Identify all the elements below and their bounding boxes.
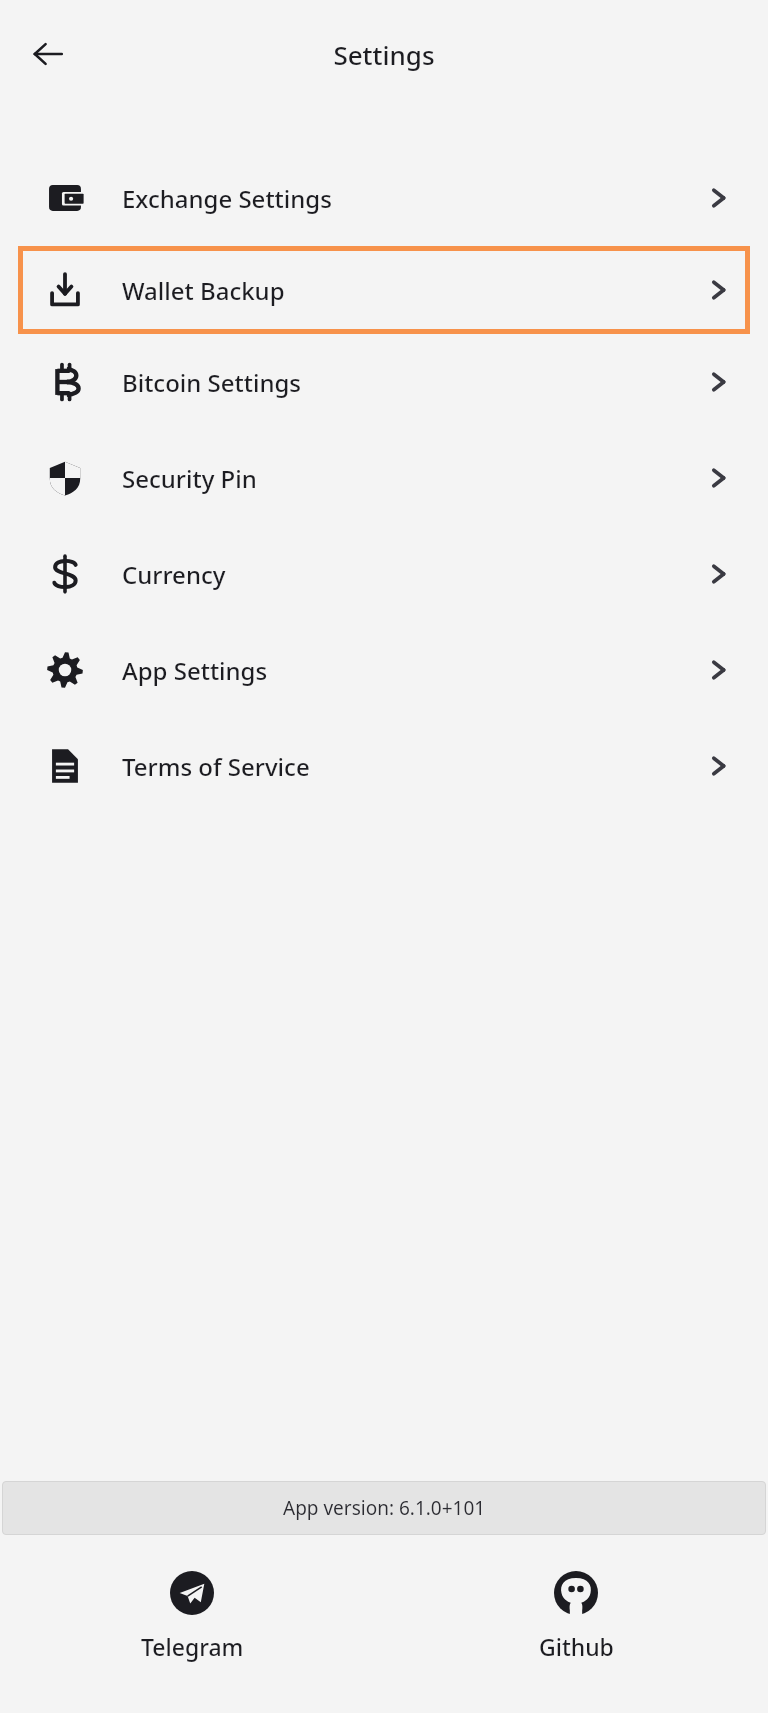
- staticText: Wallet Backup: [122, 274, 285, 307]
- staticText: Github: [539, 1631, 614, 1662]
- staticText: Bitcoin Settings: [122, 366, 302, 399]
- button[interactable]: Security Pin: [0, 430, 768, 526]
- button[interactable]: Bitcoin Settings: [0, 334, 768, 430]
- button[interactable]: Back: [22, 28, 74, 80]
- staticText: App version: 6.1.0+101: [283, 1495, 486, 1521]
- staticText: App Settings: [122, 654, 268, 687]
- button[interactable]: Github: [384, 1535, 768, 1713]
- button[interactable]: Currency: [0, 526, 768, 622]
- staticText: Currency: [122, 558, 226, 591]
- button[interactable]: App Settings: [0, 622, 768, 718]
- button[interactable]: Wallet Backup: [18, 246, 750, 334]
- button[interactable]: Terms of Service: [0, 718, 768, 814]
- staticText: Settings: [333, 37, 435, 72]
- staticText: Security Pin: [122, 462, 257, 495]
- staticText: Exchange Settings: [122, 182, 332, 215]
- staticText: Telegram: [141, 1631, 244, 1662]
- button[interactable]: Telegram: [0, 1535, 384, 1713]
- staticText: Terms of Service: [122, 750, 310, 783]
- button[interactable]: Exchange Settings: [0, 150, 768, 246]
